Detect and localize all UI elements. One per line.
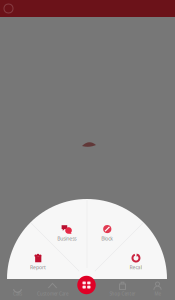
- button[interactable]: Menu: [0, 0, 17, 16]
- button[interactable]: Block: [91, 223, 123, 242]
- button[interactable]: Me: [140, 278, 175, 300]
- button[interactable]: Dial pad: [74, 273, 98, 297]
- staticText: Business: [57, 235, 76, 242]
- staticText: Block: [101, 235, 113, 242]
- staticText: Calls: [13, 291, 22, 297]
- staticText: Shop Center: [109, 291, 135, 297]
- staticText: Me: [154, 291, 160, 297]
- staticText: Customer Care: [37, 291, 68, 297]
- staticText: Report: [30, 264, 46, 271]
- button[interactable]: Customer Care: [35, 278, 70, 300]
- button[interactable]: Calls: [0, 278, 35, 300]
- button[interactable]: Recall: [120, 252, 152, 271]
- staticText: Recall: [129, 264, 142, 271]
- button[interactable]: Business: [51, 223, 83, 242]
- button[interactable]: Report: [22, 252, 54, 271]
- button[interactable]: Shop Center: [105, 278, 140, 300]
